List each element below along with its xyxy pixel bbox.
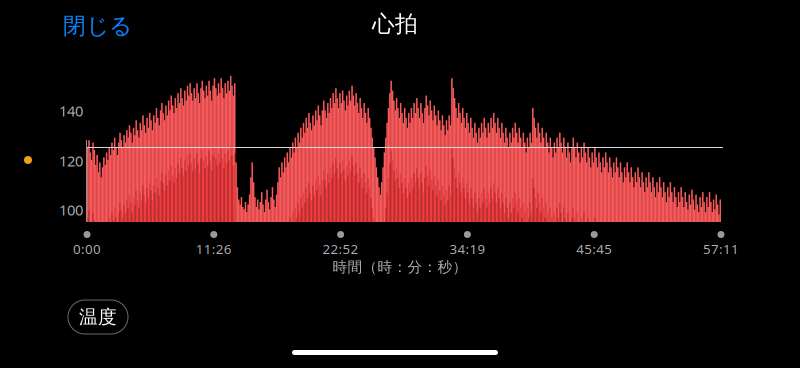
staticText: 120	[59, 151, 83, 170]
staticText: 閉じる	[63, 12, 132, 40]
staticText: 温度	[79, 305, 117, 328]
button[interactable]: 閉じる	[57, 8, 138, 44]
staticText: 34:19	[449, 240, 485, 258]
staticText: 100	[59, 200, 83, 219]
staticText: 時間（時：分：秒）	[332, 258, 467, 276]
staticText: 0:00	[73, 240, 101, 258]
staticText: 22:52	[323, 240, 359, 258]
staticText: 心拍	[372, 10, 418, 38]
staticText: 140	[59, 101, 83, 120]
staticText: 11:26	[196, 240, 232, 258]
staticText: 45:45	[576, 240, 612, 258]
staticText: 57:11	[703, 240, 739, 258]
button[interactable]: 温度	[68, 300, 128, 334]
